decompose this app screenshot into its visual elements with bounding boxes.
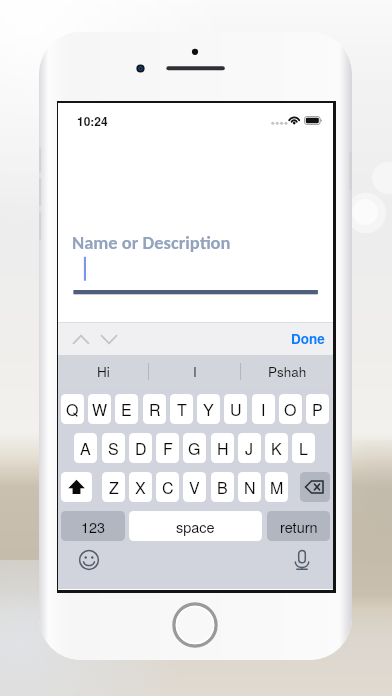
staticText: F — [163, 437, 173, 460]
button[interactable]: Shift — [61, 472, 92, 502]
staticText: B — [217, 476, 228, 499]
staticText: X — [135, 476, 146, 499]
staticText: C — [162, 476, 174, 499]
button[interactable]: P — [306, 394, 329, 424]
button[interactable]: Z — [102, 472, 125, 502]
staticText: Hi — [97, 362, 110, 381]
staticText: U — [230, 398, 242, 421]
button[interactable]: U — [224, 394, 247, 424]
staticText: Done — [291, 329, 325, 348]
staticText: R — [149, 398, 161, 421]
button[interactable]: 123 — [61, 511, 125, 541]
button[interactable]: N — [238, 472, 261, 502]
staticText: S — [108, 437, 119, 460]
button[interactable]: E — [115, 394, 138, 424]
button[interactable]: A — [74, 433, 97, 463]
staticText: V — [189, 476, 200, 499]
button[interactable]: Backspace — [300, 472, 330, 502]
button[interactable]: F — [156, 433, 179, 463]
staticText: J — [245, 437, 254, 460]
button[interactable]: H — [211, 433, 234, 463]
button[interactable]: I — [149, 355, 241, 388]
button[interactable]: space — [129, 511, 262, 541]
staticText: 10:24 — [77, 112, 108, 129]
staticText: N — [244, 476, 256, 499]
button[interactable]: R — [143, 394, 166, 424]
staticText: T — [177, 398, 187, 421]
staticText: H — [217, 437, 229, 460]
staticText: G — [188, 437, 201, 460]
button[interactable]: C — [156, 472, 179, 502]
staticText: A — [80, 437, 91, 460]
button[interactable]: return — [267, 511, 330, 541]
button[interactable]: J — [238, 433, 261, 463]
staticText: I — [193, 362, 197, 381]
button[interactable]: Y — [197, 394, 220, 424]
staticText: K — [271, 437, 282, 460]
staticText: Z — [109, 476, 119, 499]
button[interactable]: V — [183, 472, 206, 502]
staticText: M — [270, 476, 284, 499]
staticText: L — [299, 437, 308, 460]
button[interactable]: G — [183, 433, 206, 463]
button[interactable]: S — [102, 433, 125, 463]
staticText: E — [121, 398, 132, 421]
button[interactable]: Dictation — [288, 546, 316, 574]
staticText: P — [312, 398, 323, 421]
staticText: Pshah — [268, 362, 307, 381]
staticText: Q — [66, 398, 79, 421]
button[interactable]: Pshah — [241, 355, 333, 388]
button[interactable]: W — [88, 394, 111, 424]
staticText: return — [280, 516, 318, 537]
button[interactable]: I — [252, 394, 275, 424]
staticText: Y — [203, 398, 214, 421]
button[interactable]: Q — [61, 394, 84, 424]
button[interactable]: T — [170, 394, 193, 424]
button[interactable]: M — [265, 472, 288, 502]
staticText: Name or Description — [72, 231, 231, 254]
staticText: space — [176, 516, 215, 537]
button[interactable]: Previous field — [64, 322, 98, 355]
staticText: D — [135, 437, 147, 460]
button[interactable]: B — [211, 472, 234, 502]
staticText: I — [261, 398, 266, 421]
staticText: O — [284, 398, 297, 421]
button[interactable]: D — [129, 433, 152, 463]
button[interactable]: K — [265, 433, 288, 463]
button[interactable]: L — [292, 433, 315, 463]
button[interactable]: X — [129, 472, 152, 502]
button[interactable]: Next field — [92, 322, 126, 355]
button[interactable]: O — [279, 394, 302, 424]
staticText: W — [92, 398, 108, 421]
button[interactable]: Hi — [58, 355, 149, 388]
button[interactable]: Done — [279, 322, 333, 355]
staticText: 123 — [81, 516, 106, 537]
button[interactable]: Emoji keyboard — [75, 546, 103, 574]
